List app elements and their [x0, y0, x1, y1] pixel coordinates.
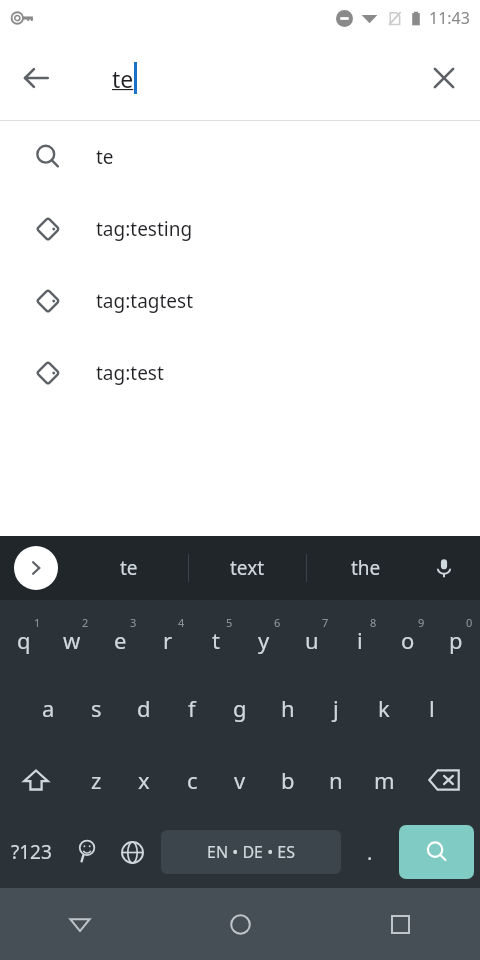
staticText: tag:test [96, 360, 164, 386]
staticText: s [91, 693, 102, 723]
staticText: b [281, 765, 295, 795]
button[interactable]: h [264, 672, 312, 744]
staticText: o [401, 625, 415, 655]
button[interactable]: Shift [0, 744, 72, 816]
staticText: n [329, 765, 343, 795]
button[interactable]: Home [160, 888, 320, 960]
button[interactable]: Search [399, 825, 474, 879]
button[interactable]: Recent apps [320, 888, 480, 960]
button[interactable]: More suggestions [14, 546, 58, 590]
button[interactable]: m [360, 744, 408, 816]
staticText: ?123 [11, 839, 52, 865]
button[interactable]: t [192, 600, 240, 672]
staticText: x [138, 765, 150, 795]
button[interactable]: e [96, 600, 144, 672]
staticText: EN • DE • ES [207, 841, 295, 863]
button[interactable]: Emoji and comma [63, 816, 109, 888]
staticText: te [120, 555, 138, 581]
staticText: l [429, 693, 435, 723]
button[interactable]: ?123 [0, 816, 63, 888]
button[interactable]: s [72, 672, 120, 744]
staticText: p [449, 625, 463, 655]
staticText: r [163, 625, 173, 655]
button[interactable]: v [216, 744, 264, 816]
button[interactable]: l [408, 672, 456, 744]
staticText: t [212, 625, 220, 655]
button[interactable]: c [168, 744, 216, 816]
button[interactable]: r [144, 600, 192, 672]
button[interactable]: g [216, 672, 264, 744]
button[interactable]: tag:testing [0, 193, 480, 265]
staticText: the [351, 555, 381, 581]
staticText: j [333, 693, 339, 723]
staticText: 9 [418, 615, 425, 630]
staticText: 8 [370, 615, 377, 630]
button[interactable]: n [312, 744, 360, 816]
button[interactable]: a [24, 672, 72, 744]
staticText: q [17, 625, 31, 655]
button[interactable]: f [168, 672, 216, 744]
button[interactable]: Backspace [408, 744, 480, 816]
staticText: w [63, 625, 81, 655]
button[interactable]: the [307, 536, 424, 600]
button[interactable]: i [336, 600, 384, 672]
staticText: 3 [130, 615, 137, 630]
staticText: h [281, 693, 295, 723]
staticText: g [233, 693, 247, 723]
button[interactable]: Voice input [422, 546, 466, 590]
staticText: 0 [466, 615, 473, 630]
staticText: 5 [226, 615, 233, 630]
staticText: 7 [322, 615, 329, 630]
button[interactable]: . [347, 816, 393, 888]
staticText: te [112, 63, 134, 94]
button[interactable]: b [264, 744, 312, 816]
button[interactable]: EN • DE • ES [161, 830, 341, 874]
staticText: c [187, 765, 198, 795]
staticText: v [234, 765, 246, 795]
button[interactable]: j [312, 672, 360, 744]
staticText: i [357, 625, 363, 655]
button[interactable]: te [70, 536, 188, 600]
button[interactable]: Back [8, 50, 64, 106]
staticText: y [258, 625, 270, 655]
button[interactable]: q [0, 600, 48, 672]
staticText: f [188, 693, 196, 723]
staticText: a [42, 693, 55, 723]
button[interactable]: p [432, 600, 480, 672]
staticText: d [137, 693, 151, 723]
staticText: z [91, 765, 102, 795]
staticText: text [230, 555, 265, 581]
staticText: te [96, 144, 114, 170]
button[interactable]: text [189, 536, 306, 600]
staticText: u [305, 625, 319, 655]
staticText: 1 [34, 615, 41, 630]
staticText: 11:43 [429, 7, 470, 29]
staticText: 4 [178, 615, 185, 630]
staticText: tag:tagtest [96, 288, 194, 314]
button[interactable]: w [48, 600, 96, 672]
button[interactable]: Change language [109, 816, 155, 888]
staticText: tag:testing [96, 216, 193, 242]
button[interactable]: k [360, 672, 408, 744]
staticText: e [114, 625, 127, 655]
button[interactable]: x [120, 744, 168, 816]
staticText: . [367, 839, 373, 866]
staticText: m [374, 765, 395, 795]
button[interactable]: Clear search [416, 50, 472, 106]
button[interactable]: tag:tagtest [0, 265, 480, 337]
button[interactable]: tag:test [0, 337, 480, 409]
button[interactable]: te [0, 121, 480, 193]
button[interactable]: y [240, 600, 288, 672]
button[interactable]: o [384, 600, 432, 672]
button[interactable]: z [72, 744, 120, 816]
staticText: k [378, 693, 390, 723]
button[interactable]: Back [0, 888, 160, 960]
button[interactable]: u [288, 600, 336, 672]
staticText: 6 [274, 615, 281, 630]
button[interactable]: d [120, 672, 168, 744]
staticText: 2 [82, 615, 89, 630]
